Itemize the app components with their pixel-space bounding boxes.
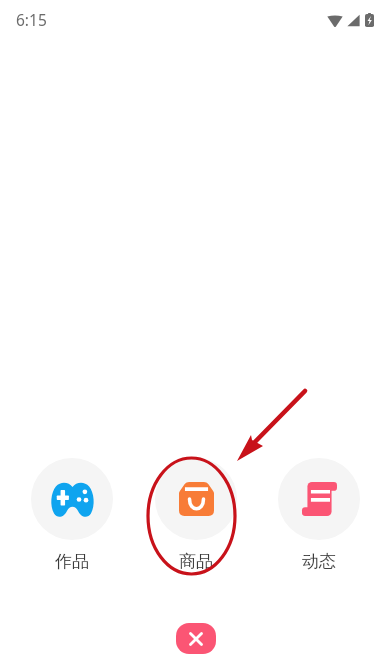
staticText: 6:15 (16, 9, 47, 30)
staticText: 动态 (302, 551, 336, 572)
staticText: 作品 (55, 551, 89, 572)
button[interactable]: Close (176, 623, 216, 654)
button[interactable]: 商品 (155, 458, 237, 572)
button[interactable]: 作品 (31, 458, 113, 572)
staticText: 商品 (179, 551, 213, 572)
button[interactable]: 动态 (278, 458, 360, 572)
